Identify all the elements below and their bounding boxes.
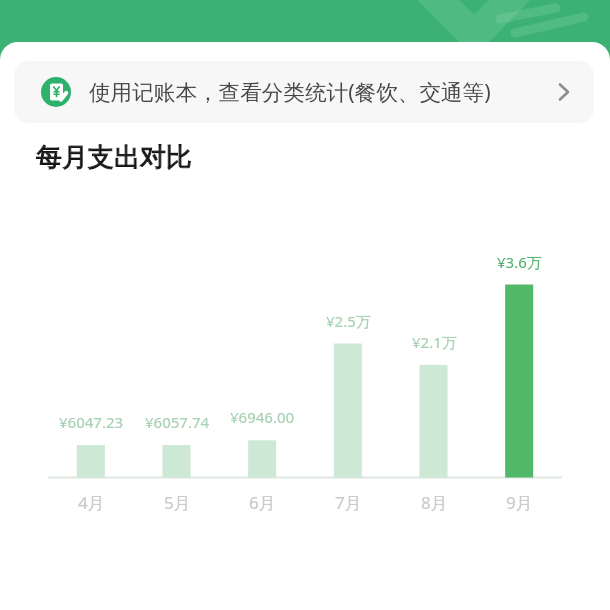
- staticText: 4月: [78, 491, 105, 514]
- staticText: ¥2.1万: [412, 332, 457, 352]
- button[interactable]: 使用记账本，查看分类统计(餐饮、交通等): [14, 61, 594, 123]
- staticText: 5月: [164, 491, 191, 514]
- staticText: ¥6057.74: [145, 412, 210, 432]
- staticText: ¥2.5万: [326, 311, 371, 331]
- staticText: 使用记账本，查看分类统计(餐饮、交通等): [89, 77, 491, 107]
- staticText: 9月: [506, 491, 533, 514]
- staticText: 每月支出对比: [36, 141, 192, 174]
- staticText: 6月: [249, 491, 276, 514]
- staticText: 8月: [421, 491, 448, 514]
- staticText: 7月: [335, 491, 362, 514]
- staticText: ¥3.6万: [497, 252, 542, 272]
- staticText: 每月支出对比: [36, 141, 192, 174]
- staticText: ¥6946.00: [230, 407, 295, 427]
- staticText: ¥6047.23: [59, 412, 124, 432]
